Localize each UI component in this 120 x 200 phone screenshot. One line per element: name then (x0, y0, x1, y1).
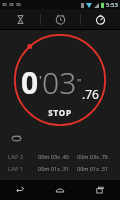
staticText: .76 (82, 86, 99, 102)
staticText: " (77, 75, 82, 87)
staticText: 5:53 (106, 1, 118, 9)
button[interactable]: LAP 1 (0, 162, 120, 174)
staticText: STOP (48, 107, 72, 118)
button[interactable]: Timer (0, 9, 40, 29)
staticText: 00m 03s .76 (73, 153, 112, 160)
staticText: 03 (42, 62, 77, 103)
staticText: LAP 2 (8, 153, 34, 160)
button[interactable]: LAP 2 (0, 150, 120, 162)
button[interactable]: Stop stopwatch (14, 34, 106, 126)
button[interactable]: Stopwatch (81, 9, 120, 29)
button[interactable]: Alarm (41, 9, 80, 29)
button[interactable]: Recents (80, 180, 120, 200)
staticText: LAP 1 (8, 165, 34, 172)
staticText: 00m 01s .31 (73, 165, 112, 172)
staticText: ' (39, 72, 42, 87)
button[interactable]: Lap (8, 130, 24, 146)
staticText: 0 (21, 62, 39, 103)
button[interactable]: Home (40, 180, 80, 200)
staticText: 00m 01s .31 (34, 165, 73, 172)
staticText: 00m 03s .45 (34, 153, 73, 160)
button[interactable]: Back (0, 180, 40, 200)
